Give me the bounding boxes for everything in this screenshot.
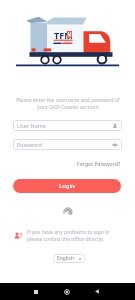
staticText: English <box>57 255 75 262</box>
button[interactable]: English <box>53 254 86 263</box>
staticText: TFM <box>54 29 73 41</box>
staticText: Login <box>59 182 75 190</box>
button[interactable]: Back <box>86 283 108 300</box>
button[interactable]: Recents <box>25 283 47 300</box>
button[interactable]: User Name <box>13 120 122 131</box>
button[interactable]: Login <box>13 179 121 193</box>
staticText: Password <box>17 141 42 148</box>
button[interactable]: Fingerprint login <box>62 206 74 218</box>
staticText: User Name <box>17 122 46 129</box>
staticText: Please enter the username and password o… <box>16 97 120 110</box>
button[interactable]: Home <box>56 283 78 300</box>
staticText: If you have any problems to sign in plea… <box>27 229 110 242</box>
button[interactable]: Password <box>13 139 122 150</box>
button[interactable]: Forgot Password? <box>77 160 121 167</box>
staticText: Forgot Password? <box>77 160 121 167</box>
